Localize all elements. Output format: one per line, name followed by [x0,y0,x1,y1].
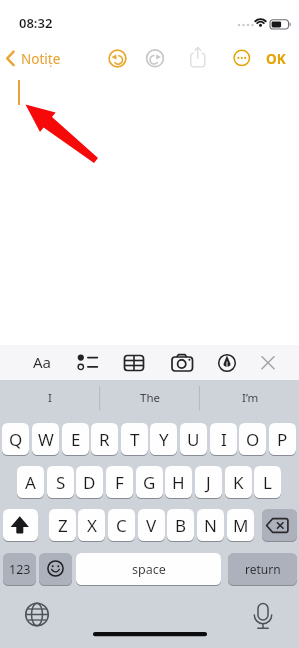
button[interactable] [250,602,276,628]
staticText: N [204,514,217,537]
staticText: Notițe [21,50,61,67]
button[interactable]: Aa [29,352,56,372]
staticText: M [233,514,249,537]
staticText: L [263,471,272,494]
staticText: J [206,471,211,494]
button[interactable] [185,46,210,71]
staticText: D [83,471,96,494]
staticText: X [87,514,97,537]
button[interactable]: K [225,466,252,498]
staticText: space [132,561,166,578]
staticText: Q [9,428,23,451]
button[interactable]: OK [263,50,289,67]
button[interactable]: L [254,466,281,498]
button[interactable] [142,46,167,71]
button[interactable] [262,509,297,541]
button[interactable]: P [269,423,296,455]
staticText: F [115,471,124,494]
button[interactable]: H [165,466,192,498]
button[interactable]: Y [150,423,177,455]
staticText: Z [58,514,68,537]
button[interactable]: Q [2,423,29,455]
button[interactable] [168,350,195,375]
staticText: return [245,561,281,577]
staticText: V [146,514,157,537]
staticText: Y [159,428,169,451]
button[interactable] [214,350,241,375]
staticText: H [172,471,185,494]
staticText: B [175,514,187,537]
button[interactable]: return [228,553,297,585]
button[interactable]: F [106,466,133,498]
button[interactable]: V [138,509,165,541]
staticText: Aa [33,352,52,372]
staticText: The [140,390,160,406]
button[interactable]: R [91,423,118,455]
button[interactable]: Notițe [19,50,63,67]
button[interactable]: X [78,509,105,541]
button[interactable]: S [47,466,74,498]
staticText: I [48,390,52,406]
button[interactable] [229,46,254,71]
button[interactable]: Z [49,509,76,541]
staticText: W [38,428,54,451]
staticText: I [221,428,227,451]
button[interactable]: N [197,509,224,541]
staticText: I’m [242,390,259,406]
staticText: U [187,428,200,451]
button[interactable]: G [136,466,163,498]
button[interactable] [74,350,101,375]
button[interactable] [105,46,130,71]
button[interactable]: M [227,509,254,541]
button[interactable]: J [195,466,222,498]
button[interactable] [24,602,50,628]
button[interactable]: 123 [3,553,36,585]
button[interactable] [121,350,148,375]
button[interactable]: B [167,509,194,541]
staticText: OK [266,50,286,67]
button[interactable]: I’m [200,381,299,415]
button[interactable] [39,553,72,585]
staticText: S [56,471,66,494]
button[interactable]: D [76,466,103,498]
staticText: O [246,428,260,451]
button[interactable]: A [17,466,44,498]
button[interactable]: The [100,381,200,415]
staticText: P [277,428,288,451]
button[interactable]: O [239,423,266,455]
button[interactable]: U [180,423,207,455]
staticText: 08:32 [19,14,53,30]
button[interactable]: space [76,553,221,585]
button[interactable]: W [32,423,59,455]
staticText: E [71,428,81,451]
staticText: R [99,428,110,451]
button[interactable]: I [0,381,100,415]
button[interactable] [255,350,282,375]
button[interactable]: E [62,423,89,455]
staticText: T [130,428,140,451]
button[interactable] [3,509,38,541]
staticText: K [233,471,244,494]
staticText: G [143,471,156,494]
staticText: A [25,471,36,494]
staticText: 123 [9,561,31,578]
button[interactable]: I [210,423,237,455]
staticText: C [116,514,127,537]
button[interactable]: T [121,423,148,455]
button[interactable]: C [108,509,135,541]
